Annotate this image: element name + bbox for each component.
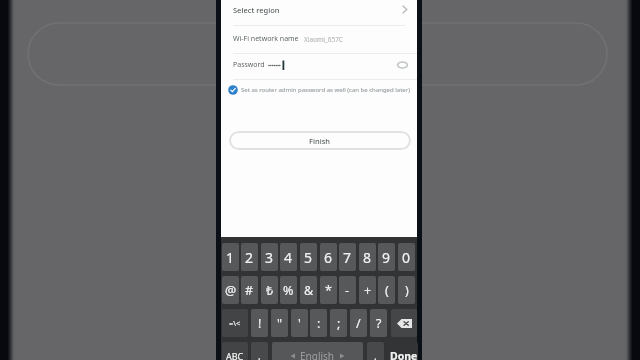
staticText: 9	[382, 248, 391, 267]
staticText: Done	[390, 349, 418, 360]
staticText: 7	[343, 248, 352, 267]
button[interactable]: (	[378, 276, 395, 304]
staticText: @	[225, 282, 237, 299]
button[interactable]: @	[222, 276, 239, 304]
button[interactable]: Done	[390, 342, 418, 360]
button[interactable]: )	[398, 276, 415, 304]
staticText: ,	[258, 349, 261, 360]
button[interactable]: =\<	[222, 309, 248, 337]
button[interactable]: %	[280, 276, 297, 304]
staticText: .	[374, 349, 377, 360]
staticText: 0	[402, 248, 411, 267]
staticText: +	[364, 282, 372, 299]
button[interactable]: ,	[251, 342, 268, 360]
button[interactable]: Password	[221, 54, 417, 76]
staticText: '	[298, 315, 301, 332]
staticText: ;	[337, 315, 341, 332]
staticText: !	[258, 315, 262, 332]
button[interactable]: &	[300, 276, 317, 304]
staticText: 6	[324, 248, 333, 267]
staticText: )	[405, 282, 409, 299]
staticText: Finish	[309, 136, 331, 146]
button[interactable]: 2	[241, 243, 258, 271]
button[interactable]: English	[272, 342, 363, 360]
staticText: &	[304, 282, 314, 299]
staticText: 1	[226, 248, 235, 267]
button[interactable]: '	[291, 309, 308, 337]
button[interactable]: ABC	[222, 342, 248, 360]
staticText: 5	[304, 248, 313, 267]
staticText: Set as router admin password as well (ca…	[241, 86, 410, 94]
button[interactable]: 3	[261, 243, 278, 271]
button[interactable]: :	[310, 309, 327, 337]
button[interactable]: .	[367, 342, 384, 360]
staticText: Password	[233, 60, 265, 70]
button[interactable]: -	[339, 276, 356, 304]
button[interactable]: 0	[398, 243, 415, 271]
button[interactable]: ?	[370, 309, 387, 337]
button[interactable]: ;	[330, 309, 347, 337]
button[interactable]: "	[271, 309, 288, 337]
button[interactable]: Set as router admin password as well (ca…	[221, 82, 417, 98]
staticText: ABC	[226, 350, 244, 360]
button[interactable]: Finish	[229, 131, 411, 150]
button[interactable]: 1	[222, 243, 239, 271]
button[interactable]: ₺	[261, 276, 278, 304]
button[interactable]: 4	[280, 243, 297, 271]
staticText: Xiaomi_657C	[304, 35, 343, 44]
staticText: *	[325, 282, 332, 299]
staticText: 4	[284, 248, 293, 267]
staticText: "	[277, 315, 283, 332]
button[interactable]: +	[359, 276, 376, 304]
staticText: =\<	[229, 318, 241, 328]
staticText: 3	[265, 248, 274, 267]
staticText: Wi-Fi network name	[233, 34, 299, 44]
staticText: 2	[245, 248, 254, 267]
staticText: #	[245, 282, 254, 299]
staticText: -	[345, 282, 350, 299]
staticText: ₺	[266, 282, 274, 299]
staticText: :	[317, 315, 321, 332]
staticText: 8	[363, 248, 372, 267]
staticText: Select region	[233, 5, 280, 15]
staticText: %	[283, 282, 294, 299]
button[interactable]: !	[251, 309, 268, 337]
button[interactable]: 6	[320, 243, 337, 271]
button[interactable]: 7	[339, 243, 356, 271]
button[interactable]: Select region	[221, 0, 417, 19]
button[interactable]: /	[350, 309, 367, 337]
button[interactable]: 9	[378, 243, 395, 271]
staticText: (	[385, 282, 389, 299]
button[interactable]: #	[241, 276, 258, 304]
staticText: English	[300, 349, 335, 360]
button[interactable]: 8	[359, 243, 376, 271]
button[interactable]: *	[320, 276, 337, 304]
button[interactable]: Wi-Fi network name	[221, 28, 417, 50]
button[interactable]	[391, 309, 417, 337]
staticText: /	[356, 315, 361, 332]
staticText: ?	[376, 315, 382, 332]
button[interactable]: 5	[300, 243, 317, 271]
